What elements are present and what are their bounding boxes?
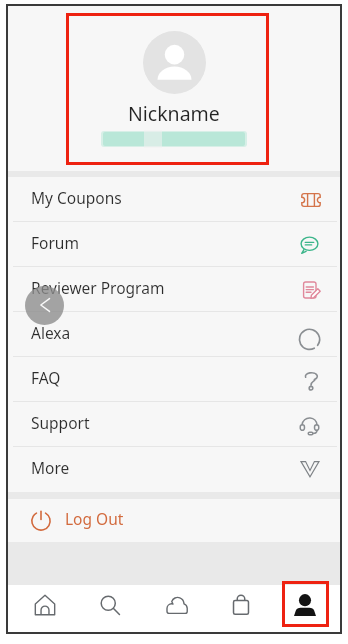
button[interactable]: Shop xyxy=(208,585,274,632)
button[interactable]: Reviewer Program xyxy=(8,267,340,312)
button[interactable]: Back xyxy=(25,286,64,325)
staticText: Forum xyxy=(31,232,79,253)
staticText: More xyxy=(31,457,70,478)
staticText: My Coupons xyxy=(31,187,122,208)
button[interactable]: Nickname xyxy=(8,6,340,171)
button[interactable]: FAQ xyxy=(8,357,340,402)
button[interactable]: Forum xyxy=(8,222,340,267)
button[interactable]: Profile xyxy=(274,585,340,632)
staticText: Support xyxy=(31,412,90,433)
button[interactable]: Alexa xyxy=(8,312,340,357)
staticText: Reviewer Program xyxy=(31,277,165,298)
button[interactable]: More xyxy=(8,447,340,492)
staticText: FAQ xyxy=(31,367,61,388)
button[interactable]: Home xyxy=(8,585,75,632)
button[interactable]: Support xyxy=(8,402,340,447)
button[interactable]: Log Out xyxy=(8,499,340,542)
button[interactable]: My Coupons xyxy=(8,177,340,222)
staticText: Nickname xyxy=(128,100,220,127)
button[interactable]: Search xyxy=(75,585,142,632)
staticText: Alexa xyxy=(31,322,71,343)
button[interactable]: Cloud xyxy=(142,585,208,632)
staticText: Log Out xyxy=(65,508,124,529)
